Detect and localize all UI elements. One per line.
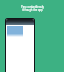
staticText: through the app — [22, 8, 43, 12]
staticText: Pay contactlessly — [21, 5, 44, 9]
